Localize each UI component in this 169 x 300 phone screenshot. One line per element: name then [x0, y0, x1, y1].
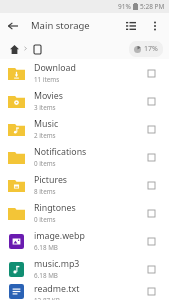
staticText: Pictures [34, 174, 68, 186]
button[interactable]: Select Ringtones [140, 202, 162, 224]
button[interactable]: image.webp [0, 227, 169, 255]
staticText: 91% [118, 2, 131, 11]
button[interactable]: Ringtones [0, 199, 169, 227]
staticText: 0 items [34, 159, 56, 168]
button[interactable]: Back [0, 13, 25, 38]
staticText: Music [34, 118, 59, 130]
button[interactable]: Download [0, 59, 169, 87]
button[interactable]: Select Notifications [140, 146, 162, 168]
button[interactable]: View mode [119, 14, 143, 38]
staticText: 2 items [34, 131, 56, 140]
staticText: 6.18 MB [34, 271, 58, 280]
button[interactable]: Select image.webp [140, 230, 162, 252]
staticText: 12.87 KB [34, 296, 60, 300]
button[interactable]: Select Pictures [140, 174, 162, 196]
button[interactable]: Music [0, 115, 169, 143]
button[interactable]: 17% [129, 41, 163, 57]
button[interactable]: Select readme.txt [140, 283, 162, 300]
button[interactable]: Device storage [29, 41, 45, 57]
staticText: music.mp3 [34, 258, 80, 270]
button[interactable]: Select Music [140, 118, 162, 140]
button[interactable]: Movies [0, 87, 169, 115]
staticText: Notifications [34, 146, 87, 158]
button[interactable]: Select Download [140, 62, 162, 84]
button[interactable]: Home [6, 41, 22, 57]
staticText: 8 items [34, 187, 56, 196]
button[interactable]: Pictures [0, 171, 169, 199]
staticText: readme.txt [34, 283, 80, 295]
button[interactable]: Select Movies [140, 90, 162, 112]
staticText: 6.18 MB [34, 243, 58, 252]
staticText: Movies [34, 90, 64, 102]
staticText: image.webp [34, 230, 85, 242]
staticText: 17% [144, 44, 158, 54]
staticText: Ringtones [34, 202, 76, 214]
staticText: 5:28 PM [140, 2, 165, 11]
button[interactable]: Notifications [0, 143, 169, 171]
staticText: Main storage [31, 19, 90, 32]
button[interactable]: music.mp3 [0, 255, 169, 283]
staticText: 3 items [34, 103, 56, 112]
staticText: 0 items [34, 215, 56, 224]
button[interactable]: Select music.mp3 [140, 258, 162, 280]
staticText: 11 items [34, 75, 60, 84]
staticText: Download [34, 62, 76, 74]
button[interactable]: More options [143, 14, 167, 38]
button[interactable]: readme.txt [0, 283, 169, 300]
